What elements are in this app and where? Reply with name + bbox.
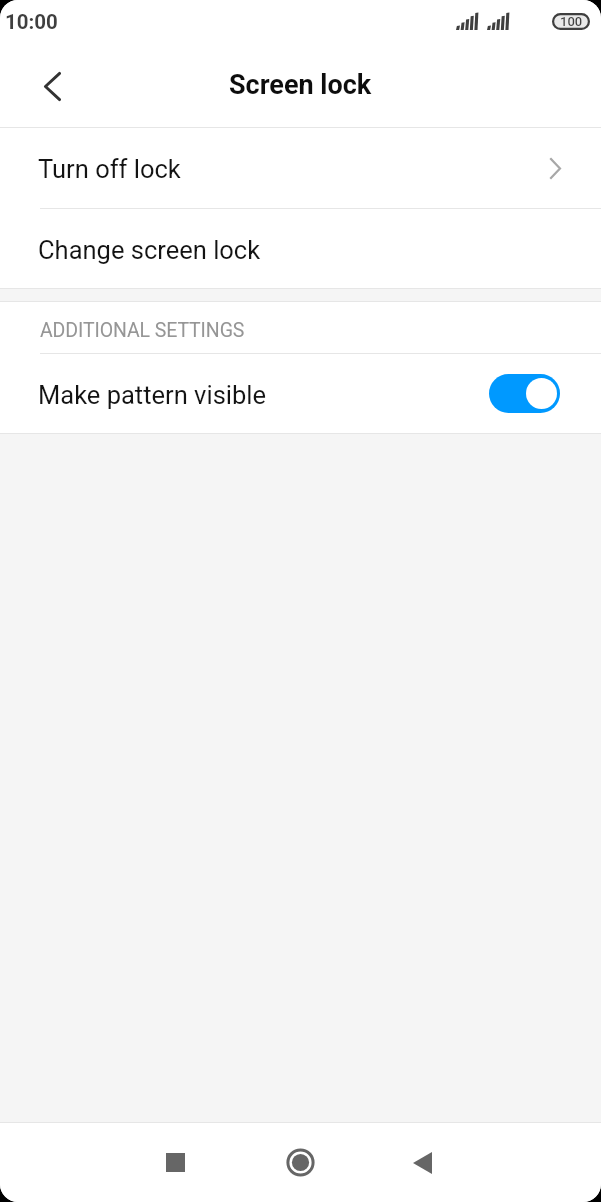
- button[interactable]: Change screen lock: [0, 209, 601, 288]
- staticText: Turn off lock: [38, 154, 181, 184]
- staticText: ADDITIONAL SETTINGS: [40, 319, 245, 342]
- staticText: Make pattern visible: [38, 380, 267, 410]
- button[interactable]: Make pattern visible: [0, 354, 601, 433]
- staticText: Change screen lock: [38, 235, 261, 265]
- staticText: Screen lock: [229, 69, 372, 101]
- button[interactable]: Turn off lock: [0, 128, 601, 208]
- button[interactable]: Recents: [137, 1123, 219, 1202]
- button[interactable]: Home: [260, 1123, 342, 1202]
- button[interactable]: Back: [382, 1123, 464, 1202]
- staticText: 10:00: [5, 10, 58, 34]
- button[interactable]: Back: [22, 56, 82, 116]
- staticText: 100: [560, 14, 583, 29]
